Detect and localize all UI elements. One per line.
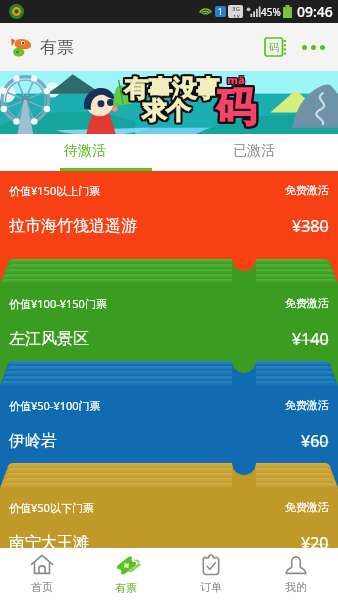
staticText: 码 (215, 83, 255, 133)
staticText: 求个 (144, 94, 192, 124)
staticText: 有事没事 (124, 74, 220, 104)
staticText: 有事没事 (122, 76, 218, 106)
staticText: mǎ (226, 73, 244, 88)
staticText: 求个 (142, 97, 190, 127)
staticText: 求个 (142, 94, 190, 124)
staticText: 求个 (141, 95, 189, 125)
staticText: 码 (218, 84, 258, 134)
button[interactable]: 首页 (0, 548, 84, 600)
button[interactable]: 活动横幅 (0, 71, 338, 134)
staticText: 待激活 (64, 142, 106, 160)
staticText: 免费激活 (285, 296, 329, 310)
staticText: 有事没事 (123, 73, 219, 103)
staticText: ¥20 (301, 532, 329, 554)
staticText: 有事没事 (122, 74, 218, 104)
staticText: 有事没事 (124, 75, 220, 105)
staticText: 码 (214, 84, 254, 134)
staticText: 码 (214, 81, 254, 131)
staticText: mǎ (227, 71, 245, 86)
staticText: 求个 (142, 95, 190, 125)
staticText: 09:46 (297, 2, 333, 21)
staticText: 我的 (285, 580, 307, 594)
staticText: 有事没事 (123, 75, 219, 105)
staticText: ¥140 (292, 328, 329, 350)
staticText: mǎ (227, 72, 245, 87)
staticText: 求个 (141, 94, 189, 124)
staticText: 1X (233, 13, 240, 18)
staticText: mǎ (226, 72, 244, 87)
staticText: 求个 (140, 95, 188, 125)
staticText: 价值¥150以上门票 (9, 183, 101, 198)
staticText: 码 (216, 84, 256, 134)
staticText: 价值¥100-¥150门票 (9, 296, 107, 311)
staticText: 码 (217, 81, 257, 131)
button[interactable]: 已激活 (169, 134, 338, 168)
staticText: 码 (218, 81, 258, 131)
staticText: 求个 (144, 95, 192, 125)
staticText: 有事没事 (124, 76, 220, 106)
button[interactable]: 更多 (296, 30, 330, 64)
button[interactable]: 有票 (84, 548, 168, 600)
staticText: 免费激活 (285, 500, 329, 514)
staticText: 码 (217, 82, 257, 132)
staticText: mǎ (226, 71, 244, 86)
staticText: 订单 (200, 580, 222, 594)
staticText: mǎ (228, 73, 246, 88)
staticText: 码 (218, 82, 258, 132)
button[interactable]: 价值¥50以下门票 (0, 463, 338, 600)
staticText: 有事没事 (124, 72, 220, 102)
staticText: 首页 (31, 580, 53, 594)
staticText: 有事没事 (126, 72, 222, 102)
staticText: 码 (216, 80, 256, 130)
staticText: 求个 (141, 98, 189, 128)
staticText: 有事没事 (123, 74, 219, 104)
button[interactable]: 价值¥100-¥150门票 (0, 259, 338, 419)
staticText: ¥380 (292, 215, 329, 237)
staticText: 有事没事 (122, 73, 218, 103)
staticText: 免费激活 (285, 398, 329, 412)
button[interactable]: 扫码 (258, 30, 292, 64)
button[interactable]: 价值¥50-¥100门票 (0, 361, 338, 521)
staticText: 码 (215, 84, 255, 134)
staticText: 求个 (144, 97, 192, 127)
staticText: 码 (215, 82, 255, 132)
staticText: 码 (214, 82, 254, 132)
staticText: 求个 (143, 96, 191, 126)
button[interactable]: 我的 (253, 548, 338, 600)
staticText: 码 (215, 81, 255, 131)
staticText: 码 (216, 81, 256, 131)
staticText: 拉市海竹筏逍遥游 (9, 216, 137, 236)
staticText: 码 (215, 80, 255, 130)
staticText: 3G (232, 5, 240, 13)
staticText: 有事没事 (123, 76, 219, 106)
staticText: mǎ (228, 72, 246, 87)
staticText: 有事没事 (126, 74, 222, 104)
staticText: 已激活 (233, 142, 275, 160)
staticText: 求个 (144, 96, 192, 126)
staticText: 求个 (140, 98, 188, 128)
staticText: 码 (218, 83, 258, 133)
staticText: 求个 (143, 95, 191, 125)
staticText: 求个 (141, 97, 189, 127)
staticText: 求个 (143, 98, 191, 128)
button[interactable]: 订单 (168, 548, 253, 600)
staticText: ¥60 (301, 430, 329, 452)
staticText: 码 (216, 82, 256, 132)
staticText: 有事没事 (125, 74, 221, 104)
staticText: 求个 (143, 97, 191, 127)
button[interactable]: 价值¥150以上门票 (0, 171, 338, 331)
staticText: 求个 (141, 96, 189, 126)
staticText: 45% (261, 5, 281, 19)
staticText: 有事没事 (125, 76, 221, 106)
staticText: 有票 (115, 581, 137, 595)
staticText: 求个 (144, 98, 192, 128)
staticText: 码 (217, 83, 257, 133)
button[interactable]: 待激活 (0, 134, 169, 168)
staticText: 价值¥50-¥100门票 (9, 398, 101, 413)
staticText: 码 (217, 84, 257, 134)
staticText: 有事没事 (126, 75, 222, 105)
staticText: 有事没事 (126, 73, 222, 103)
staticText: 有事没事 (126, 76, 222, 106)
staticText: 求个 (142, 96, 190, 126)
staticText: 有事没事 (125, 72, 221, 102)
